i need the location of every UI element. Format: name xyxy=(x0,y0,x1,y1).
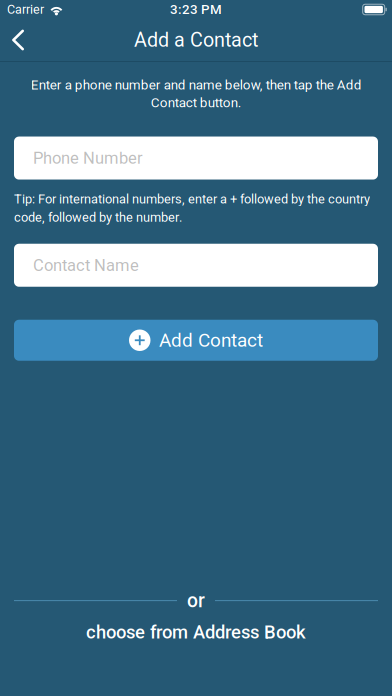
staticText: Add Contact xyxy=(159,329,263,351)
staticText: Contact Name xyxy=(33,256,139,275)
button[interactable]: Add Contact xyxy=(0,320,392,361)
staticText: 3:23 PM xyxy=(170,2,222,17)
button[interactable]: choose from Address Book xyxy=(0,612,392,652)
staticText: Enter a phone number and name below, the… xyxy=(30,77,361,111)
button[interactable]: Back xyxy=(0,18,44,61)
staticText: Phone Number xyxy=(33,148,143,168)
staticText: Carrier xyxy=(7,2,44,17)
staticText: Tip: For international numbers, enter a … xyxy=(14,192,370,225)
staticText: or xyxy=(187,589,205,612)
staticText: Add a Contact xyxy=(134,28,258,51)
button[interactable]: Phone Number xyxy=(14,137,378,180)
button[interactable]: Contact Name xyxy=(14,244,378,287)
staticText: choose from Address Book xyxy=(86,621,306,643)
